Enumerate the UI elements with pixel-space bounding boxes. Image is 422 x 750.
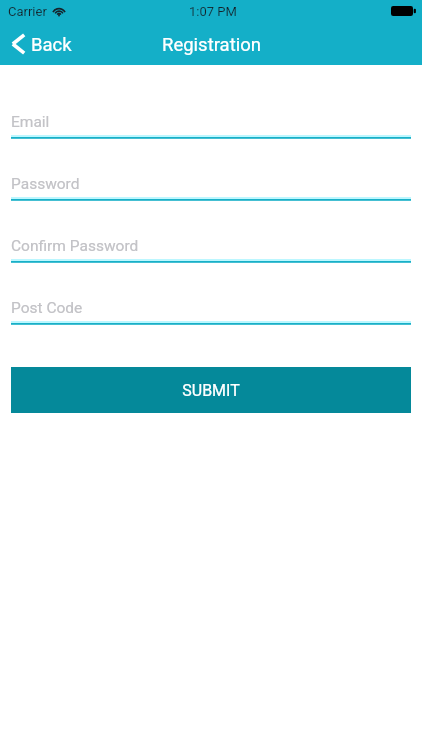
staticText: SUBMIT	[182, 381, 240, 400]
button[interactable]: SUBMIT	[11, 367, 411, 413]
staticText: Password	[11, 175, 80, 193]
button[interactable]: Back	[0, 29, 84, 61]
staticText: Back	[31, 34, 72, 56]
button[interactable]: Post Code	[11, 293, 411, 327]
button[interactable]: Email	[11, 107, 411, 141]
staticText: Email	[11, 113, 50, 131]
other: Back	[11, 33, 26, 55]
button[interactable]: Password	[11, 169, 411, 203]
staticText: Carrier	[8, 4, 47, 19]
staticText: 1:07 PM	[189, 4, 237, 19]
button[interactable]: Confirm Password	[11, 231, 411, 265]
other: Battery full	[391, 6, 416, 16]
staticText: Post Code	[11, 299, 83, 317]
staticText: Registration	[162, 34, 261, 56]
staticText: Confirm Password	[11, 237, 139, 255]
